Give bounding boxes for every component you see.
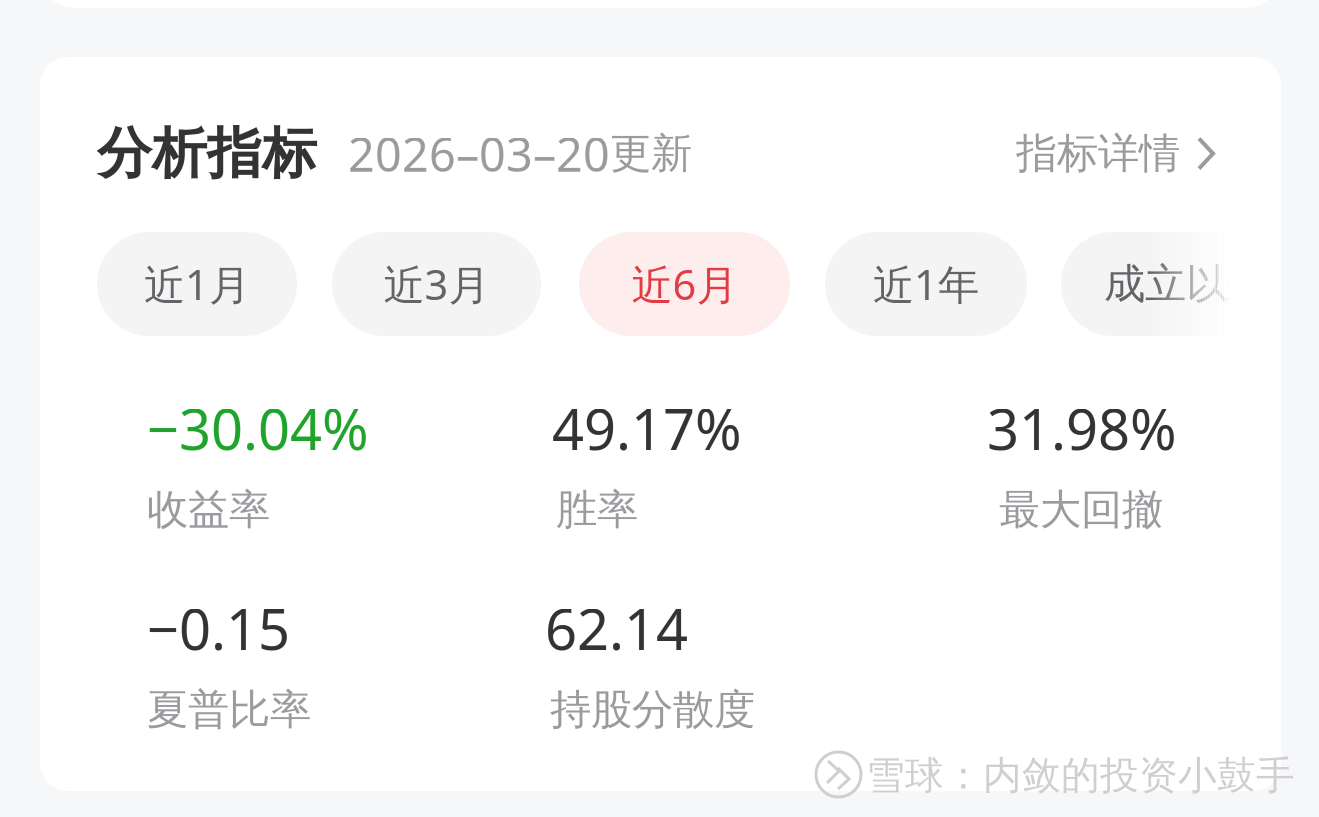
button[interactable]: 近6月 xyxy=(579,232,790,336)
staticText: 最大回撤 xyxy=(999,484,1163,535)
button[interactable]: 近1月 xyxy=(97,232,297,336)
staticText: 分析指标 xyxy=(97,120,317,187)
button[interactable]: 指标详情 xyxy=(1016,128,1216,179)
staticText: −30.04% xyxy=(147,391,369,465)
staticText: 近3月 xyxy=(383,257,489,311)
staticText: 近1月 xyxy=(144,257,250,311)
staticText: 持股分散度 xyxy=(550,684,755,735)
button[interactable]: 成立以来 xyxy=(1061,232,1311,336)
button[interactable]: 近1年 xyxy=(825,232,1027,336)
staticText: 成立以来 xyxy=(1104,259,1268,309)
staticText: 更新 xyxy=(610,128,692,179)
staticText: 指标详情 xyxy=(1016,128,1180,179)
staticText: 49.17% xyxy=(552,391,742,465)
button[interactable]: 近3月 xyxy=(332,232,541,336)
staticText: 62.14 xyxy=(545,591,688,665)
staticText: 夏普比率 xyxy=(147,684,311,735)
staticText: 雪球：内敛的投资小鼓手 xyxy=(866,752,1295,799)
staticText: 收益率 xyxy=(147,484,270,535)
staticText: 近1年 xyxy=(873,257,979,311)
staticText: −0.15 xyxy=(147,591,290,665)
staticText: 近6月 xyxy=(631,257,737,311)
staticText: 31.98% xyxy=(987,391,1177,465)
staticText: 胜率 xyxy=(556,484,638,535)
staticText: 2026–03–20 xyxy=(348,123,610,185)
